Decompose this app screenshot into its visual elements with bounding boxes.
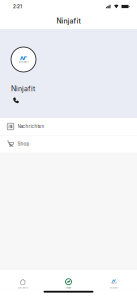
button[interactable]: User (46, 275, 91, 292)
staticText: Ninjafit (56, 17, 80, 25)
button[interactable]: Call (11, 93, 21, 105)
staticText: User (66, 286, 71, 289)
staticText: Shop (17, 141, 29, 147)
staticText: Ninjafit (11, 84, 35, 93)
button[interactable]: Shop (0, 135, 137, 152)
staticText: NINJAFIT (111, 282, 117, 284)
staticText: Nachrichten (17, 124, 44, 129)
button[interactable]: Startseite (0, 275, 46, 292)
button[interactable]: Nachrichten (0, 118, 137, 135)
staticText: Ninjafit (110, 286, 119, 289)
staticText: NINJAFIT (18, 61, 28, 63)
staticText: Startseite (18, 286, 28, 289)
button[interactable]: NINJAFIT (91, 275, 137, 292)
staticText: 2:21 (13, 4, 22, 9)
